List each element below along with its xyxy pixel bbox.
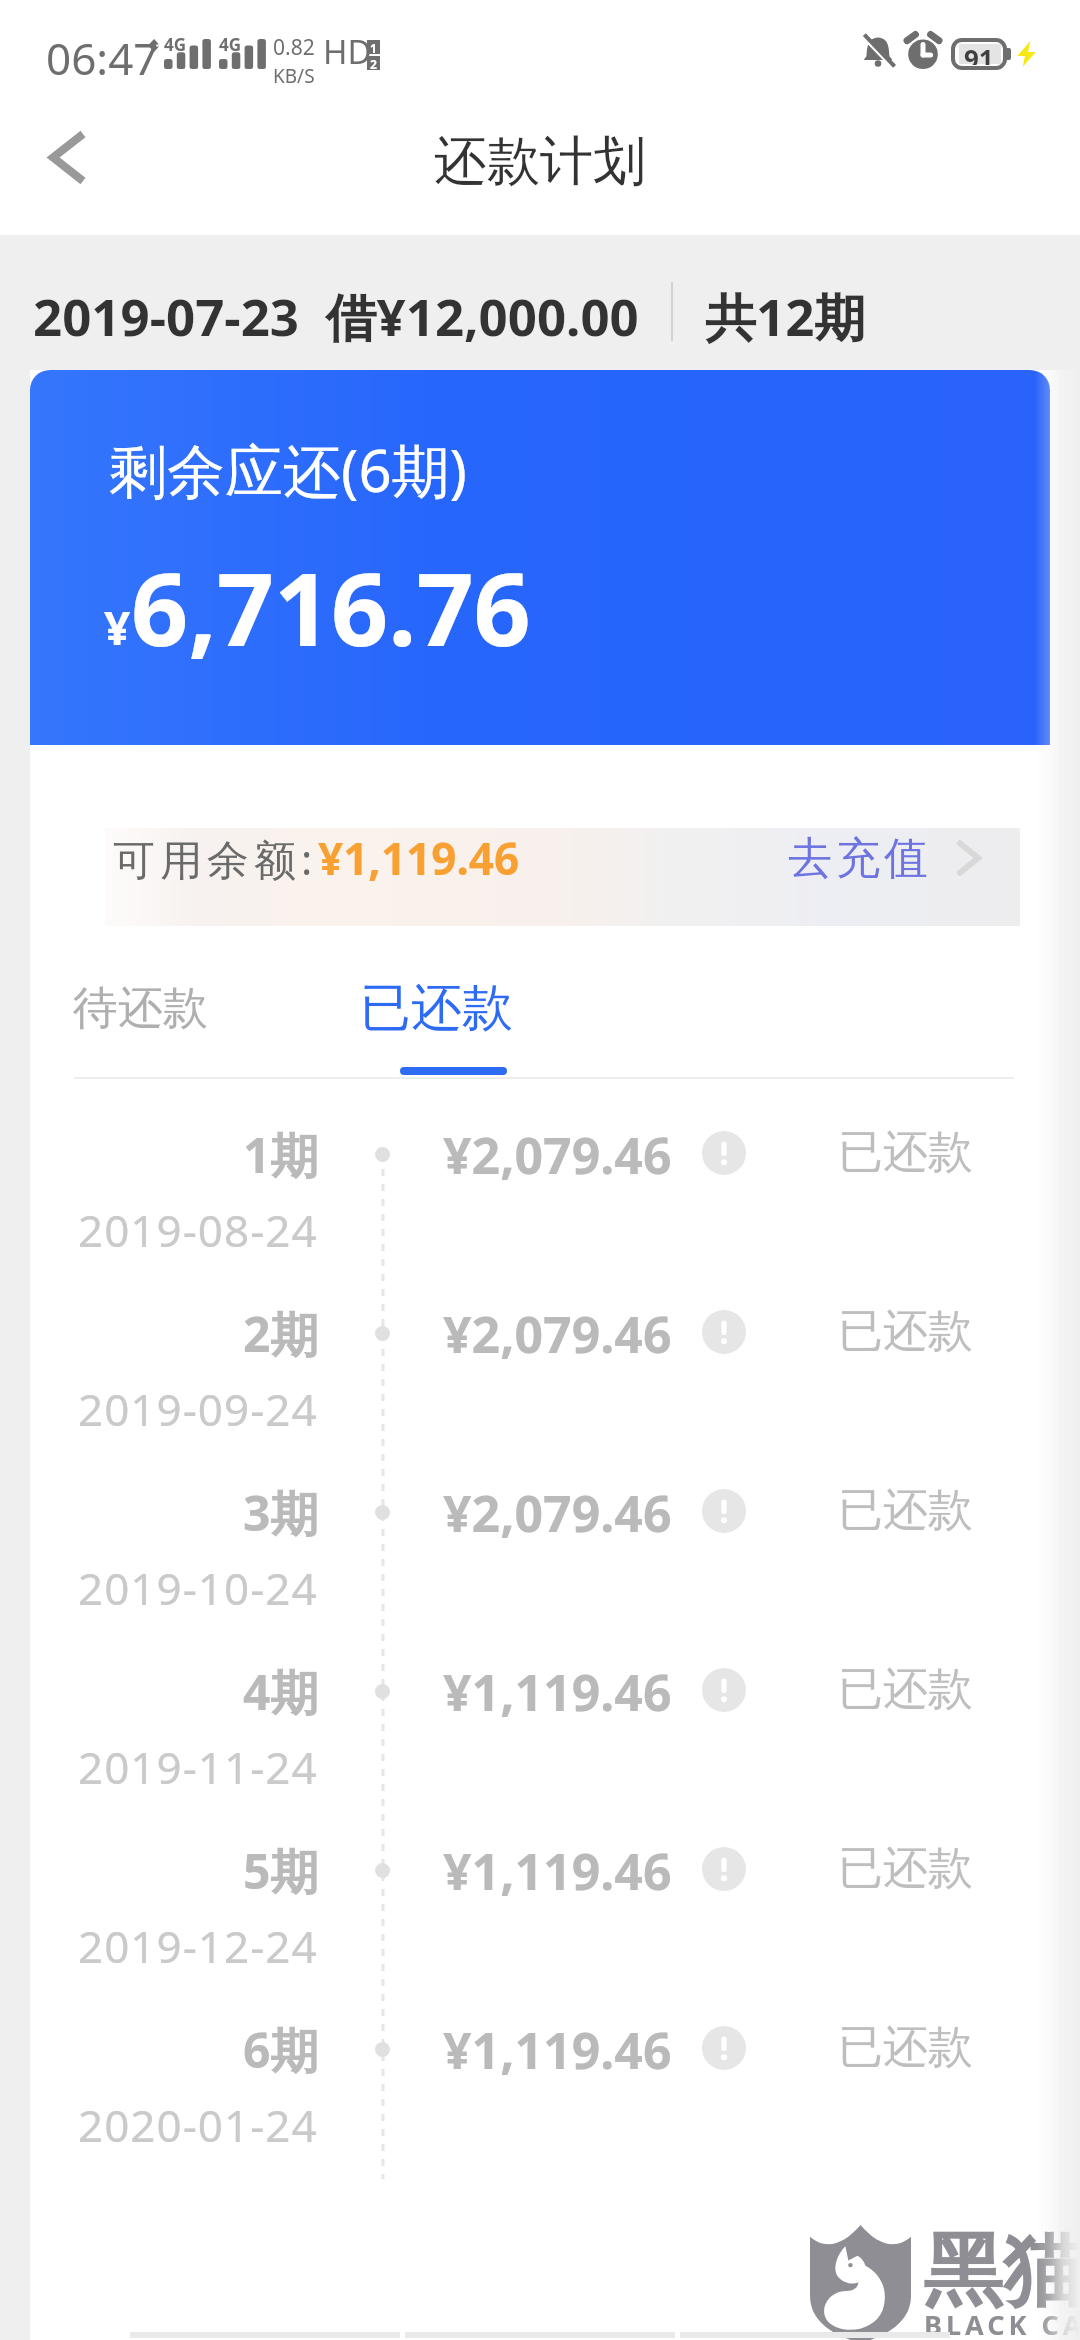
staticText: 剩余应还(6期) [109,430,467,509]
staticText: ¥1,119.46 [443,1837,672,1905]
staticText: 已还款 [838,1303,973,1360]
button[interactable]: 详情 [702,1131,746,1175]
button[interactable]: 待还款 [58,958,222,1058]
button[interactable]: 详情 [702,2026,746,2070]
staticText: 2019-08-24 [78,1200,318,1260]
staticText: 2019-09-24 [78,1379,318,1439]
staticText: 4G [164,33,187,56]
staticText: ¥1,119.46 [443,1658,672,1726]
staticText: 可用余额: [113,830,318,887]
staticText: 2期 [243,1301,319,1367]
button[interactable]: 已还款 [345,958,528,1058]
staticText: 共12期 [705,281,866,351]
staticText: 黑猫 [923,2221,1080,2322]
staticText: 已还款 [838,1840,973,1897]
staticText: 91 [964,42,994,65]
staticText: 2020-01-24 [78,2095,318,2155]
staticText: 已还款 [838,1124,973,1181]
button[interactable]: 1期 [30,1079,1080,1258]
staticText: 5期 [243,1838,319,1904]
staticText: 2019-07-23 借¥12,000.00 [33,281,639,351]
staticText: ¥1,119.46 [443,2016,672,2084]
button[interactable]: 详情 [702,1310,746,1354]
staticText: 已还款 [838,1482,973,1539]
button[interactable]: 6期 [30,1974,1080,2153]
staticText: BLACK CAT [924,2306,1080,2340]
button[interactable]: 5期 [30,1795,1080,1974]
staticText: 2019-10-24 [78,1558,318,1618]
staticText: 06:47 [46,28,159,88]
staticText: HD [323,29,372,74]
staticText: ¥1,119.46 [318,828,520,888]
staticText: 待还款 [73,980,208,1037]
staticText: 1期 [243,1122,319,1188]
staticText: 2019-12-24 [78,1916,318,1976]
button[interactable]: 可用余额: [113,803,982,913]
button[interactable]: Back [22,112,112,202]
staticText: 0.82 [273,33,315,62]
staticText: 已还款 [838,1661,973,1718]
staticText: 已还款 [360,976,513,1040]
staticText: 4G [219,33,242,56]
staticText: 6期 [243,2017,319,2083]
staticText: ¥ [104,596,131,659]
staticText: 6,716.76 [131,539,531,675]
button[interactable]: 4期 [30,1616,1080,1795]
staticText: 2 [370,56,377,70]
staticText: 3期 [243,1480,319,1546]
staticText: ¥2,079.46 [443,1300,672,1368]
staticText: 2019-11-24 [78,1737,318,1797]
staticText: KB/S [273,63,315,89]
staticText: ¥2,079.46 [443,1121,672,1189]
staticText: 4期 [243,1659,319,1725]
button[interactable]: 3期 [30,1437,1080,1616]
button[interactable]: 详情 [702,1489,746,1533]
button[interactable]: 详情 [702,1668,746,1712]
staticText: 1 [370,40,377,54]
staticText: 已还款 [838,2019,973,2076]
staticText: 还款计划 [434,128,646,195]
button[interactable]: 2期 [30,1258,1080,1437]
staticText: 去充值 [786,831,930,886]
staticText: ¥2,079.46 [443,1479,672,1547]
button[interactable]: 详情 [702,1847,746,1891]
